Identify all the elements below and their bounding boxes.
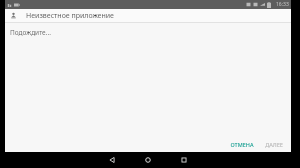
staticText: ОТМЕНА [230, 141, 254, 148]
button[interactable]: Home [130, 152, 166, 168]
button[interactable]: Back [94, 152, 130, 168]
staticText: 16:33 [276, 1, 289, 8]
staticText: Неизвестное приложение [26, 11, 114, 21]
button[interactable]: ДАЛЕЕ [261, 138, 287, 151]
staticText: Подождите... [10, 28, 51, 37]
staticText: ДАЛЕЕ [265, 141, 283, 148]
button[interactable]: ОТМЕНА [226, 138, 258, 151]
button[interactable]: Recent apps [166, 152, 202, 168]
